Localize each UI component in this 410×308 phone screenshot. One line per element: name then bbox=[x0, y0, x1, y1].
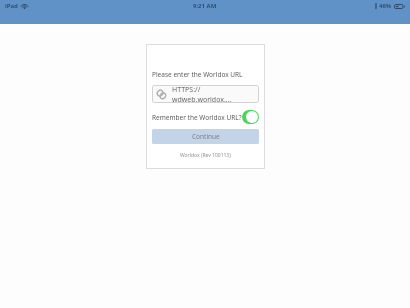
staticText: iPad bbox=[5, 2, 18, 10]
other: Wi-Fi bbox=[21, 3, 28, 9]
staticText: Please enter the Worldox URL bbox=[152, 70, 243, 79]
button[interactable]: Remember the Worldox URL? bbox=[152, 109, 259, 125]
button[interactable]: Remember the Worldox URL, on bbox=[242, 110, 259, 124]
other: Link bbox=[156, 89, 167, 100]
other: Battery bbox=[394, 4, 405, 9]
staticText: Continue bbox=[192, 132, 220, 141]
staticText: 46% bbox=[379, 2, 392, 10]
staticText: Worldox (Rev 100113) bbox=[180, 152, 231, 159]
staticText: 9:21 AM bbox=[193, 2, 217, 10]
button[interactable]: Link bbox=[152, 85, 259, 103]
staticText: HTTPS://wdweb.worldox.... bbox=[172, 85, 255, 103]
button[interactable]: Continue bbox=[152, 129, 259, 144]
staticText: Remember the Worldox URL? bbox=[152, 113, 242, 122]
